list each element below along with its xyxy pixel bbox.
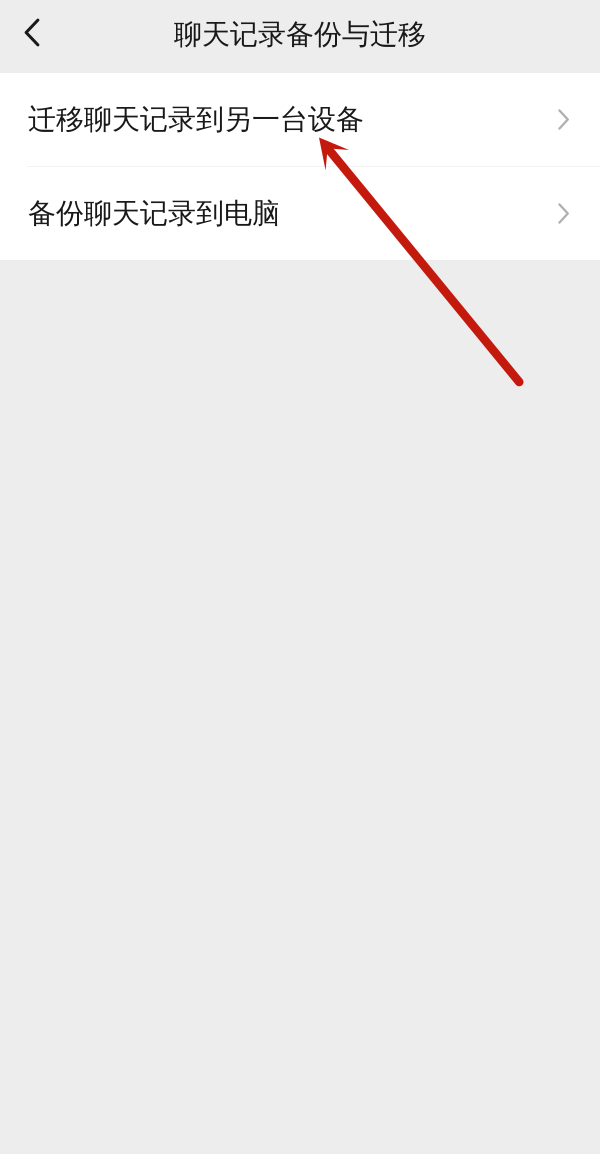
button[interactable]: 备份聊天记录到电脑 — [0, 167, 600, 260]
button[interactable]: Back — [0, 4, 64, 69]
staticText: 迁移聊天记录到另一台设备 — [28, 102, 364, 137]
staticText: 聊天记录备份与迁移 — [174, 17, 426, 52]
button[interactable]: 迁移聊天记录到另一台设备 — [0, 73, 600, 166]
staticText: 备份聊天记录到电脑 — [28, 196, 280, 231]
